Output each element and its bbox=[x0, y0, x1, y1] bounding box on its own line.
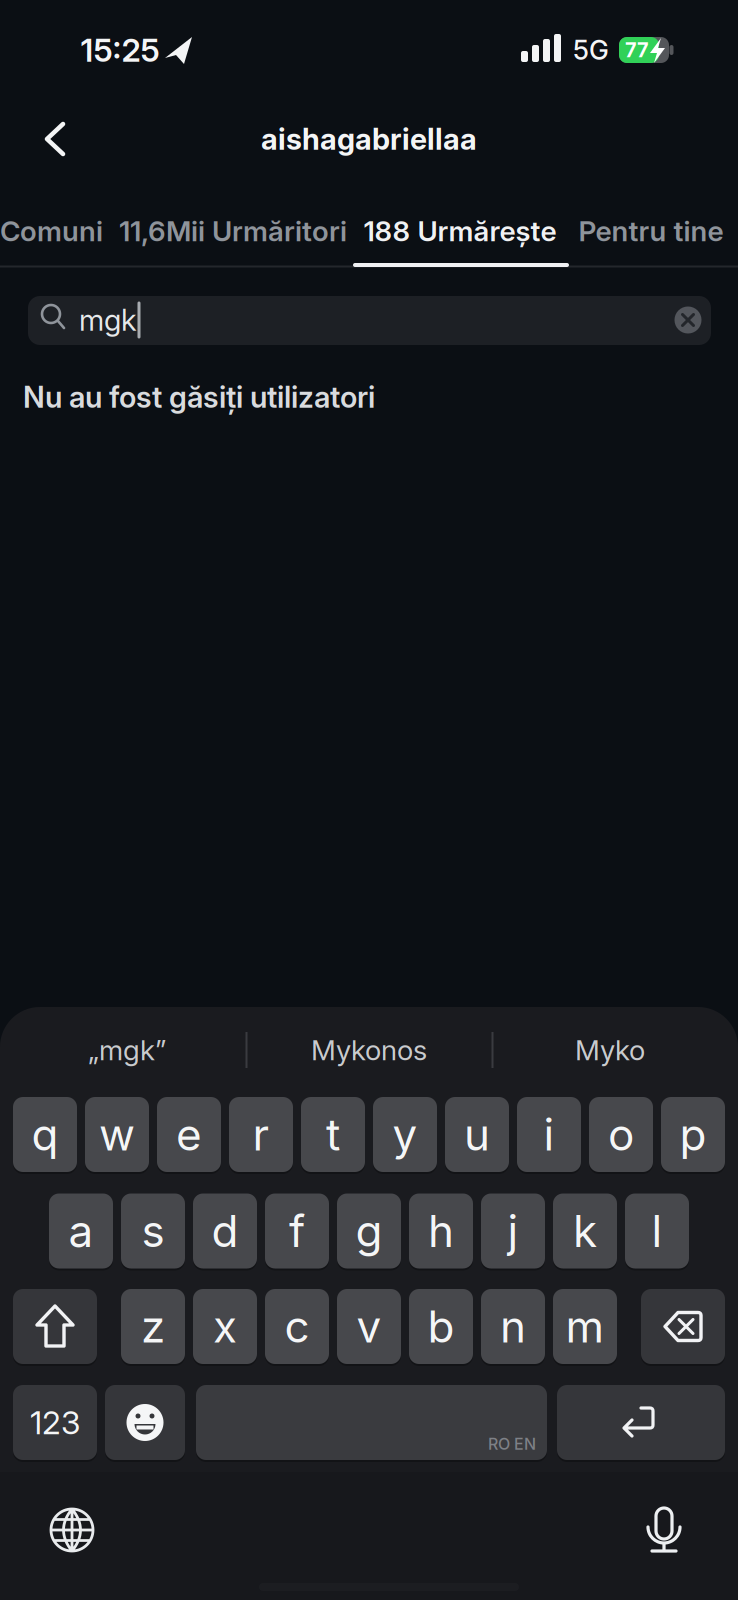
button[interactable]: o bbox=[589, 1097, 653, 1172]
button[interactable]: e bbox=[157, 1097, 221, 1172]
staticText: t bbox=[326, 1108, 340, 1160]
button[interactable]: c bbox=[265, 1289, 329, 1364]
staticText: k bbox=[573, 1205, 597, 1257]
staticText: Mykonos bbox=[311, 1033, 427, 1066]
staticText: 123 bbox=[30, 1404, 80, 1441]
button[interactable]: f bbox=[265, 1193, 329, 1268]
staticText: Comuni bbox=[0, 214, 103, 247]
button[interactable]: Mykonos bbox=[254, 1018, 484, 1082]
button[interactable]: „mgk” bbox=[12, 1018, 242, 1082]
staticText: f bbox=[289, 1205, 305, 1257]
staticText: x bbox=[213, 1300, 237, 1352]
button[interactable]: Return bbox=[557, 1385, 725, 1460]
button[interactable]: Space bbox=[196, 1385, 547, 1460]
staticText: 77 bbox=[625, 38, 649, 62]
button[interactable]: Clear search bbox=[674, 306, 701, 333]
staticText: y bbox=[392, 1108, 417, 1160]
staticText: z bbox=[141, 1300, 165, 1352]
button[interactable]: Comuni bbox=[0, 201, 220, 261]
staticText: r bbox=[252, 1108, 269, 1160]
staticText: j bbox=[507, 1205, 518, 1257]
staticText: u bbox=[464, 1108, 490, 1160]
button[interactable]: i bbox=[517, 1097, 581, 1172]
staticText: d bbox=[211, 1205, 238, 1257]
button[interactable]: d bbox=[193, 1193, 257, 1268]
button[interactable]: l bbox=[625, 1193, 689, 1268]
staticText: a bbox=[68, 1205, 93, 1257]
staticText: m bbox=[565, 1300, 604, 1352]
staticText: 188 Urmărește bbox=[363, 214, 556, 247]
button[interactable]: Myko bbox=[495, 1018, 725, 1082]
staticText: Myko bbox=[575, 1033, 645, 1066]
button[interactable]: x bbox=[193, 1289, 257, 1364]
button[interactable]: a bbox=[49, 1193, 113, 1268]
staticText: RO EN bbox=[488, 1435, 536, 1453]
button[interactable]: u bbox=[445, 1097, 509, 1172]
staticText: aishagabriellaa bbox=[261, 122, 477, 156]
staticText: p bbox=[679, 1108, 706, 1160]
staticText: 11,6Mii Urmăritori bbox=[119, 214, 347, 247]
staticText: Pentru tine bbox=[578, 214, 723, 247]
button[interactable]: n bbox=[481, 1289, 545, 1364]
button[interactable]: 123 bbox=[13, 1385, 97, 1460]
staticText: i bbox=[543, 1108, 554, 1160]
button[interactable]: k bbox=[553, 1193, 617, 1268]
staticText: c bbox=[284, 1300, 309, 1352]
staticText: Nu au fost găsiți utilizatori bbox=[23, 380, 375, 414]
button[interactable]: v bbox=[337, 1289, 401, 1364]
staticText: l bbox=[651, 1205, 662, 1257]
staticText: q bbox=[31, 1108, 58, 1160]
button[interactable]: Dictation bbox=[640, 1503, 688, 1555]
staticText: n bbox=[500, 1300, 526, 1352]
button[interactable]: 188 Urmărește bbox=[363, 201, 556, 261]
staticText: o bbox=[608, 1108, 634, 1160]
button[interactable]: Next keyboard bbox=[48, 1506, 96, 1554]
staticText: w bbox=[99, 1108, 135, 1160]
staticText: g bbox=[355, 1205, 382, 1257]
button[interactable]: j bbox=[481, 1193, 545, 1268]
button[interactable]: Emoji bbox=[105, 1385, 185, 1460]
button[interactable]: w bbox=[85, 1097, 149, 1172]
staticText: h bbox=[428, 1205, 454, 1257]
staticText: 15:25 bbox=[80, 31, 159, 69]
button[interactable]: Pentru tine bbox=[578, 201, 723, 261]
button[interactable]: y bbox=[373, 1097, 437, 1172]
button[interactable]: 11,6Mii Urmăritori bbox=[119, 201, 347, 261]
button[interactable]: s bbox=[121, 1193, 185, 1268]
staticText: 5G bbox=[573, 34, 609, 66]
button[interactable]: Delete bbox=[641, 1289, 725, 1364]
staticText: v bbox=[356, 1300, 381, 1352]
staticText: b bbox=[427, 1300, 454, 1352]
button[interactable]: z bbox=[121, 1289, 185, 1364]
button[interactable]: b bbox=[409, 1289, 473, 1364]
staticText: mgk bbox=[79, 303, 137, 337]
button[interactable]: Back bbox=[33, 109, 77, 169]
button[interactable]: q bbox=[13, 1097, 77, 1172]
staticText: s bbox=[141, 1205, 164, 1257]
staticText: e bbox=[176, 1108, 202, 1160]
button[interactable]: g bbox=[337, 1193, 401, 1268]
button[interactable]: h bbox=[409, 1193, 473, 1268]
staticText: „mgk” bbox=[88, 1033, 166, 1066]
button[interactable]: r bbox=[229, 1097, 293, 1172]
button[interactable]: Shift bbox=[13, 1289, 97, 1364]
button[interactable]: p bbox=[661, 1097, 725, 1172]
button[interactable]: m bbox=[553, 1289, 617, 1364]
button[interactable]: t bbox=[301, 1097, 365, 1172]
